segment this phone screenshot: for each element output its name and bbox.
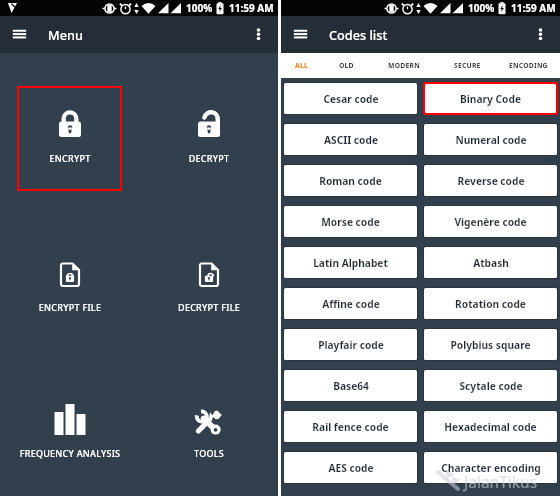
staticText: Numeral code [455,133,527,147]
staticText: Affine code [322,297,380,311]
staticText: Scytale code [459,379,523,393]
button[interactable]: ENCODING [497,53,560,78]
button[interactable]: Character encoding [424,452,557,483]
staticText: ASCII code [324,133,378,147]
staticText: 11:59 AM [229,1,274,15]
staticText: DECRYPT [147,152,271,164]
button[interactable]: Base64 [284,370,417,401]
button[interactable]: Morse code [284,206,417,237]
button[interactable]: DECRYPT FILE [147,254,271,319]
staticText: ALL [295,61,308,70]
staticText: TOOLS [147,447,271,459]
button[interactable]: Binary Code [425,84,556,113]
staticText: Morse code [321,215,380,229]
staticText: ENCRYPT FILE [8,301,132,313]
staticText: Vigenère code [454,215,527,229]
staticText: Hexadecimal code [444,420,537,434]
button[interactable]: Polybius square [424,329,557,360]
button[interactable]: Open navigation menu [1,16,38,53]
staticText: Base64 [333,379,369,393]
button[interactable]: AES code [284,452,417,483]
staticText: 100% [186,1,213,15]
staticText: OLD [339,61,354,70]
button[interactable]: Vigenère code [424,206,557,237]
button[interactable]: ALL [281,53,322,78]
button[interactable]: Cesar code [284,83,417,114]
button[interactable]: Reverse code [424,165,557,196]
button[interactable]: ASCII code [284,124,417,155]
staticText: Rail fence code [312,420,389,434]
staticText: 11:59 AM [511,1,556,15]
staticText: ENCODING [509,61,548,70]
button[interactable]: TOOLS [147,396,271,465]
button[interactable]: Playfair code [284,329,417,360]
staticText: SECURE [454,61,481,70]
button[interactable]: Scytale code [424,370,557,401]
staticText: ENCRYPT [8,152,132,164]
staticText: AES code [328,461,374,475]
staticText: Polybius square [450,338,531,352]
staticText: Reverse code [457,174,525,188]
staticText: Character encoding [441,461,541,475]
staticText: Binary Code [460,92,521,106]
button[interactable]: MODERN [371,53,436,78]
staticText: Roman code [319,174,382,188]
button[interactable]: Latin Alphabet [284,247,417,278]
button[interactable]: Rotation code [424,288,557,319]
staticText: DECRYPT FILE [147,301,271,313]
staticText: MODERN [388,61,420,70]
staticText: JalanTikus [464,471,538,492]
button[interactable]: FREQUENCY ANALYSIS [8,396,132,465]
button[interactable]: Open navigation menu [282,16,319,53]
button[interactable]: ENCRYPT [8,101,132,170]
staticText: 100% [468,1,495,15]
button[interactable]: Atbash [424,247,557,278]
button[interactable]: SECURE [436,53,498,78]
button[interactable]: More options [522,16,559,53]
staticText: Atbash [473,256,509,270]
staticText: FREQUENCY ANALYSIS [8,447,132,459]
button[interactable]: Affine code [284,288,417,319]
button[interactable]: Roman code [284,165,417,196]
button[interactable]: More options [240,16,277,53]
button[interactable]: Hexadecimal code [424,411,557,442]
button[interactable]: Numeral code [424,124,557,155]
staticText: Menu [48,26,83,43]
button[interactable]: Rail fence code [284,411,417,442]
staticText: Cesar code [323,92,379,106]
staticText: Latin Alphabet [313,256,388,270]
button[interactable]: DECRYPT [147,101,271,170]
button[interactable]: OLD [322,53,371,78]
button[interactable]: ENCRYPT FILE [8,254,132,319]
staticText: Codes list [329,26,388,43]
staticText: Rotation code [455,297,526,311]
staticText: Playfair code [318,338,384,352]
